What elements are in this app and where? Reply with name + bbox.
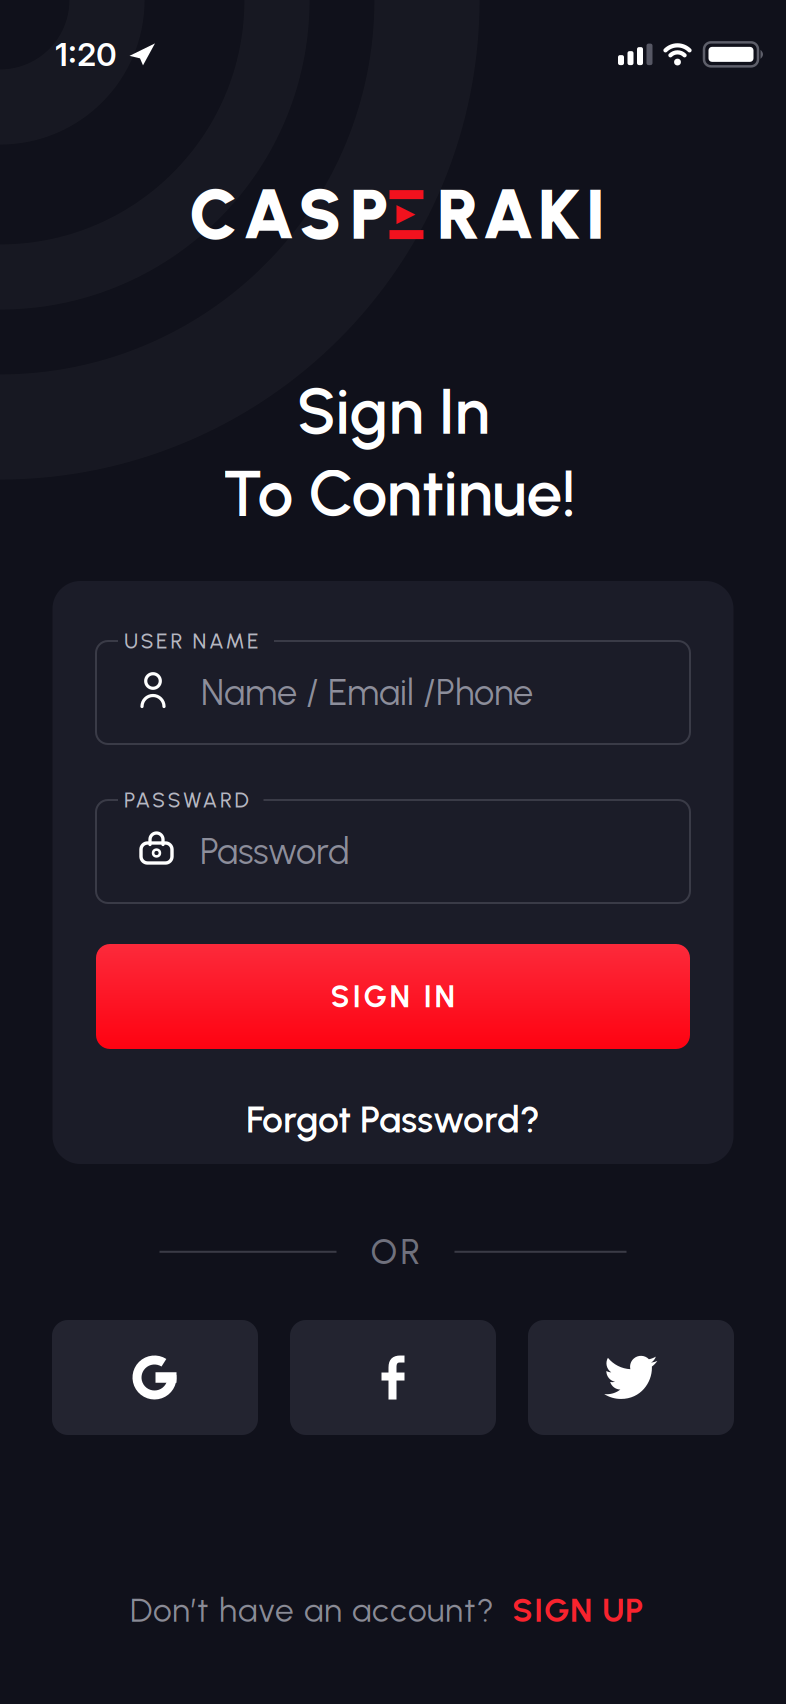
- button[interactable]: Sign in with Google: [52, 1320, 258, 1435]
- staticText: Password: [200, 830, 350, 873]
- staticText: SIGN IN: [330, 978, 455, 1015]
- staticText: CASP: [189, 173, 389, 256]
- staticText: RAKI: [436, 173, 606, 256]
- button[interactable]: SIGN UP: [512, 1590, 643, 1630]
- button[interactable]: SIGN IN: [96, 944, 690, 1049]
- staticText: PASSWARD: [124, 787, 248, 813]
- button[interactable]: Sign in with Twitter: [528, 1320, 734, 1435]
- staticText: OR: [370, 1231, 420, 1273]
- staticText: SIGN UP: [512, 1590, 643, 1630]
- button[interactable]: Sign in with Facebook: [290, 1320, 496, 1435]
- staticText: To Continue!: [222, 455, 575, 532]
- staticText: 1:20: [55, 35, 117, 74]
- staticText: Forgot Password?: [246, 1097, 540, 1142]
- staticText: Name / Email /Phone: [201, 671, 533, 714]
- staticText: Don’t have an account?: [130, 1590, 494, 1630]
- button[interactable]: Forgot Password?: [246, 1097, 540, 1142]
- staticText: Sign In: [296, 373, 489, 450]
- staticText: USER NAME: [124, 628, 259, 654]
